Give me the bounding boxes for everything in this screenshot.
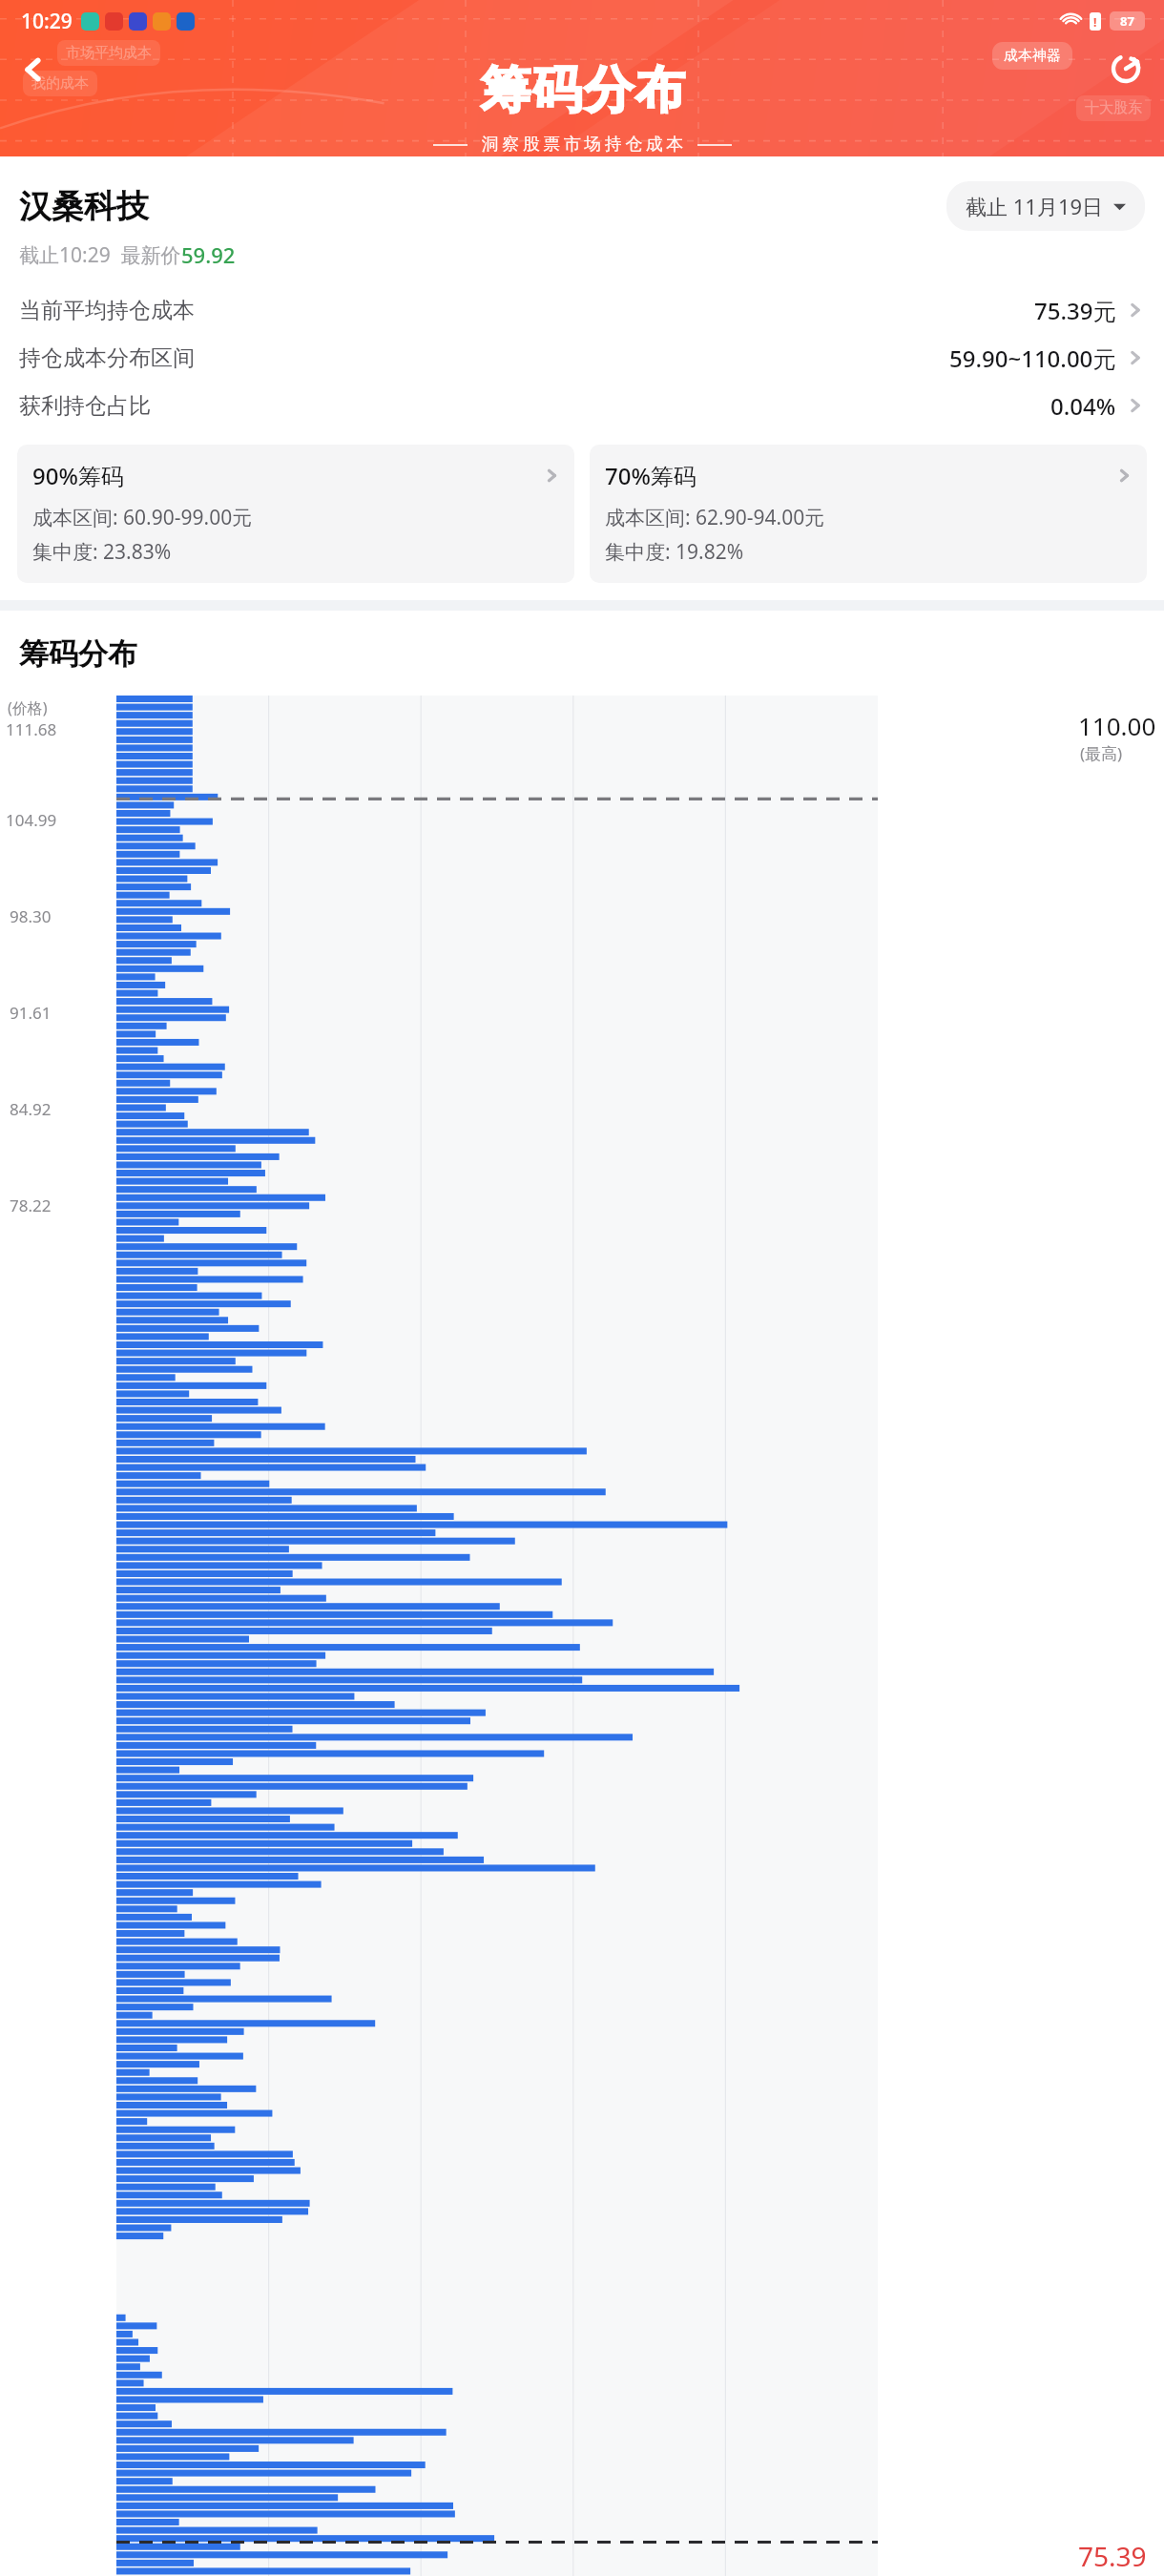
- staticText: 汉桑科技: [19, 186, 149, 227]
- button[interactable]: Refresh: [1103, 46, 1149, 92]
- staticText: 87: [1120, 12, 1134, 30]
- staticText: 59.90~110.00元: [949, 343, 1116, 374]
- staticText: 筹码分布: [480, 59, 686, 122]
- staticText: (价格): [8, 697, 48, 718]
- button[interactable]: 持仓成本分布区间: [0, 334, 1164, 382]
- staticText: 75.39元: [1034, 295, 1116, 326]
- button[interactable]: 成本神器: [992, 42, 1072, 70]
- staticText: 70%筹码: [605, 460, 696, 491]
- staticText: 111.68: [6, 718, 57, 740]
- staticText: 我的成本: [31, 74, 89, 93]
- staticText: 成本区间: 62.90-94.00元: [605, 504, 825, 531]
- staticText: 98.30: [10, 905, 52, 927]
- staticText: 0.04%: [1050, 390, 1116, 422]
- staticText: 91.61: [10, 1002, 52, 1024]
- staticText: 截止 11月19日: [966, 192, 1104, 220]
- staticText: 获利持仓占比: [19, 392, 151, 420]
- staticText: !: [1093, 14, 1097, 30]
- button[interactable]: 90%筹码: [17, 445, 574, 583]
- button[interactable]: 获利持仓占比: [0, 382, 1164, 429]
- staticText: 洞察股票市场持仓成本: [480, 134, 685, 156]
- staticText: (最高): [1080, 742, 1123, 764]
- staticText: 110.00: [1078, 709, 1156, 742]
- staticText: 成本神器: [1004, 47, 1061, 65]
- staticText: 104.99: [6, 809, 57, 831]
- button[interactable]: Back: [11, 48, 55, 92]
- staticText: 十大股东: [1085, 99, 1142, 117]
- button[interactable]: 当前平均持仓成本: [0, 286, 1164, 334]
- staticText: 78.22: [10, 1195, 52, 1216]
- button[interactable]: 截止 11月19日: [946, 181, 1145, 231]
- staticText: 当前平均持仓成本: [19, 297, 195, 324]
- staticText: 市场平均成本: [66, 44, 152, 62]
- staticText: 84.92: [10, 1098, 52, 1120]
- staticText: 成本区间: 60.90-99.00元: [32, 504, 253, 531]
- staticText: 10:29: [21, 8, 73, 35]
- staticText: 集中度: 23.83%: [32, 538, 172, 566]
- staticText: 截止10:29 最新价: [19, 241, 181, 269]
- staticText: 集中度: 19.82%: [605, 538, 744, 566]
- staticText: 持仓成本分布区间: [19, 344, 195, 372]
- staticText: 90%筹码: [32, 460, 124, 491]
- staticText: 59.92: [181, 240, 236, 269]
- staticText: 筹码分布: [19, 635, 137, 673]
- staticText: 75.39: [1078, 2538, 1147, 2574]
- button[interactable]: 70%筹码: [590, 445, 1147, 583]
